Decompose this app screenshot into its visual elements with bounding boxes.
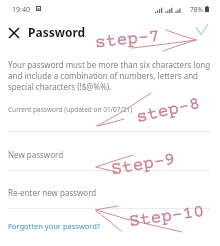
staticText: Forgotten your password?: [8, 221, 101, 231]
button[interactable]: New password: [0, 147, 220, 161]
button[interactable]: Confirm: [192, 19, 212, 39]
button[interactable]: Re-enter new password: [0, 185, 220, 199]
button[interactable]: Forgotten your password?: [8, 221, 101, 235]
staticText: Current password (updated on 01/07/21): [8, 105, 133, 114]
staticText: step-7: [94, 27, 161, 53]
staticText: special characters (!$@%%).: [8, 81, 112, 92]
staticText: 19:40: [12, 5, 30, 15]
staticText: Password: [28, 24, 86, 40]
staticText: Re-enter new password: [8, 187, 97, 198]
staticText: New password: [8, 149, 64, 160]
staticText: step-8: [135, 94, 202, 128]
staticText: and include a combination of numbers, le…: [8, 70, 199, 81]
staticText: Step-9: [110, 149, 177, 180]
staticText: 78%: [190, 5, 203, 14]
button[interactable]: Close: [4, 23, 24, 43]
staticText: Step-10: [128, 202, 206, 232]
staticText: Your password must be more than six char…: [8, 59, 211, 70]
button[interactable]: Current password (updated on 01/07/21): [0, 102, 220, 116]
